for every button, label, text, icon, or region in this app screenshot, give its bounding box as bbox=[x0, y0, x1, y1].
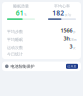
staticText: 今日统计 bbox=[7, 52, 23, 57]
staticText: 次/分 bbox=[65, 13, 72, 17]
staticText: 平均心率 bbox=[54, 4, 70, 9]
staticText: 平均睡眠 bbox=[7, 37, 23, 42]
staticText: 电池智能保护 bbox=[10, 64, 34, 69]
staticText: 28m bbox=[70, 38, 76, 42]
staticText: 平均步数 bbox=[7, 29, 23, 34]
staticText: 61 bbox=[16, 8, 24, 17]
staticText: 182 bbox=[52, 8, 64, 17]
staticText: 次 bbox=[73, 46, 76, 50]
button[interactable]: 电池智能保护 bbox=[2, 62, 81, 71]
staticText: % bbox=[24, 13, 26, 17]
staticText: 已开启 bbox=[67, 65, 76, 68]
staticText: 3 bbox=[69, 43, 72, 50]
staticText: 运动次数 bbox=[7, 45, 23, 50]
staticText: 睡眠质量 bbox=[13, 4, 29, 9]
staticText: 步 bbox=[73, 30, 76, 34]
staticText: 1566 bbox=[60, 27, 72, 34]
staticText: 3h bbox=[63, 35, 69, 42]
